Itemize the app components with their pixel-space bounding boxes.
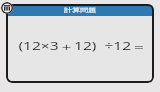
button[interactable]: App icon: [1, 2, 13, 14]
staticText: (12×3＋12) ÷12＝: [18, 39, 147, 53]
staticText: 計算問題: [64, 7, 96, 14]
button[interactable]: 計算問題: [6, 4, 154, 83]
